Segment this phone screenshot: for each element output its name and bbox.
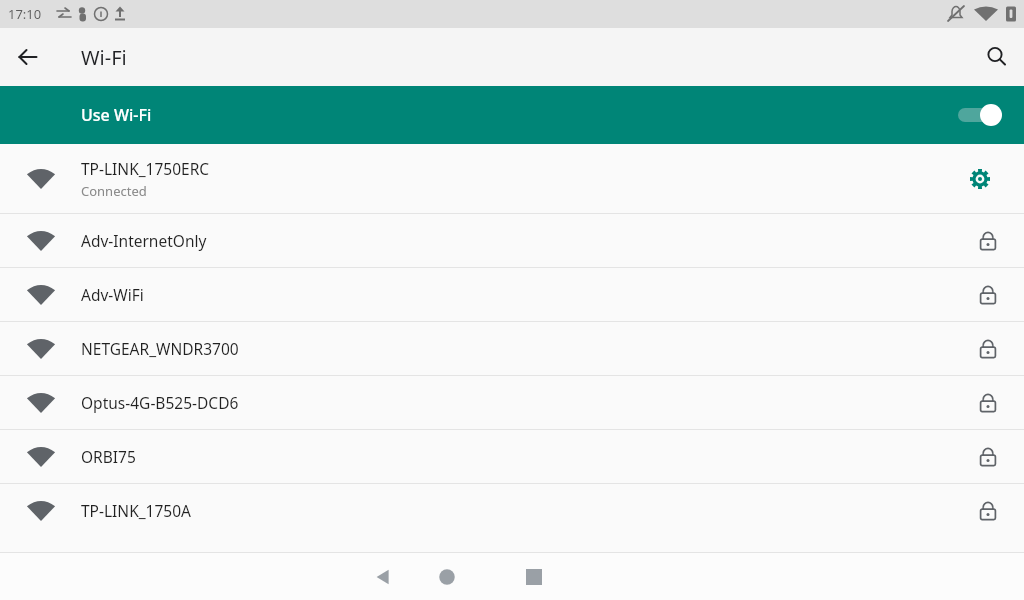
staticText: Connected xyxy=(81,182,147,200)
button[interactable]: Adv-InternetOnly xyxy=(0,214,1024,267)
button[interactable]: ORBI75 xyxy=(0,430,1024,483)
staticText: Optus-4G-B525-DCD6 xyxy=(81,392,974,413)
button[interactable]: Adv-WiFi xyxy=(0,268,1024,321)
button[interactable]: Recent apps xyxy=(470,553,598,600)
staticText: Adv-InternetOnly xyxy=(81,230,974,251)
button[interactable]: TP-LINK_1750ERC xyxy=(0,144,1024,213)
button[interactable]: Back xyxy=(8,37,48,77)
button[interactable]: Use Wi-Fi xyxy=(0,86,1024,144)
staticText: 17:10 xyxy=(8,5,42,23)
staticText: Wi-Fi xyxy=(81,44,127,71)
staticText: TP-LINK_1750ERC xyxy=(81,158,210,179)
button[interactable]: Back xyxy=(342,553,424,600)
staticText: Adv-WiFi xyxy=(81,284,974,305)
button[interactable]: NETGEAR_WNDR3700 xyxy=(0,322,1024,375)
staticText: NETGEAR_WNDR3700 xyxy=(81,338,974,359)
button[interactable]: Home xyxy=(424,553,470,600)
button[interactable]: Network settings xyxy=(960,159,1000,199)
staticText: ORBI75 xyxy=(81,446,974,467)
button[interactable]: TP-LINK_1750A xyxy=(0,484,1024,537)
button[interactable]: Search xyxy=(975,35,1019,79)
staticText: TP-LINK_1750A xyxy=(81,500,974,521)
button[interactable]: Optus-4G-B525-DCD6 xyxy=(0,376,1024,429)
staticText: Use Wi-Fi xyxy=(81,104,152,126)
